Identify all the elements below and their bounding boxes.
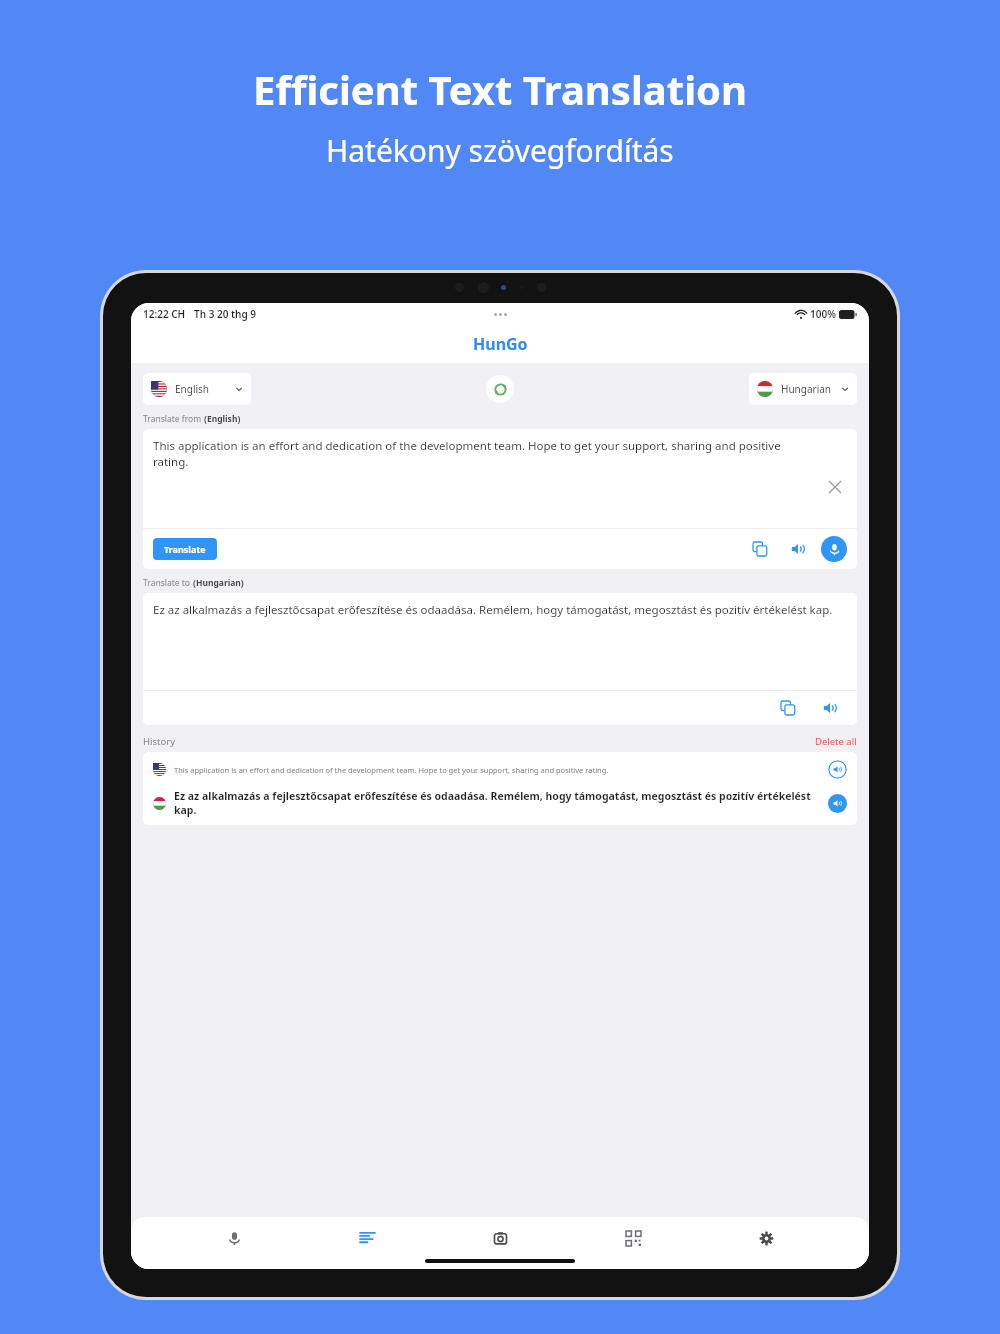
- staticText: This application is an effort and dedica…: [153, 438, 817, 469]
- staticText: (Hungarian): [193, 577, 244, 589]
- button[interactable]: Play source audio: [828, 760, 847, 779]
- staticText: Delete all: [815, 735, 857, 748]
- button[interactable]: English: [143, 373, 251, 405]
- staticText: Translate to: [143, 577, 193, 589]
- staticText: 12:22 CH: [143, 307, 186, 321]
- button[interactable]: Speak translation: [819, 697, 841, 719]
- button[interactable]: Speak text: [787, 538, 809, 560]
- staticText: Ez az alkalmazás a fejlesztőcsapat erőfe…: [174, 789, 820, 817]
- button[interactable]: Camera translate: [470, 1225, 530, 1251]
- staticText: Efficient Text Translation: [253, 62, 748, 116]
- button[interactable]: Swap languages: [486, 375, 514, 403]
- staticText: English: [175, 382, 210, 396]
- button[interactable]: Copy translation: [777, 697, 799, 719]
- button[interactable]: Copy text: [749, 538, 771, 560]
- staticText: History: [143, 735, 175, 748]
- button[interactable]: QR scan: [603, 1225, 663, 1251]
- button[interactable]: Hungarian: [749, 373, 857, 405]
- button[interactable]: Play translation audio: [828, 794, 847, 813]
- button[interactable]: Translate: [153, 538, 217, 560]
- staticText: Th 3 20 thg 9: [194, 307, 257, 321]
- staticText: Translate from: [143, 413, 204, 425]
- staticText: Translate: [164, 543, 206, 555]
- staticText: (English): [204, 413, 241, 425]
- staticText: Ez az alkalmazás a fejlesztőcsapat erőfe…: [153, 602, 833, 618]
- staticText: This application is an effort and dedica…: [174, 765, 609, 775]
- button[interactable]: Clear text: [825, 477, 845, 497]
- staticText: HunGo: [473, 333, 528, 355]
- button[interactable]: Delete all: [815, 735, 857, 748]
- button[interactable]: Settings: [736, 1225, 796, 1251]
- staticText: 100%: [810, 307, 836, 321]
- button[interactable]: Voice translate: [204, 1225, 264, 1251]
- button[interactable]: Text translate: [337, 1225, 397, 1251]
- button[interactable]: Voice input: [821, 536, 847, 562]
- button[interactable]: This application is an effort and dedica…: [143, 752, 857, 825]
- staticText: Hungarian: [781, 382, 832, 396]
- button[interactable]: HunGo: [473, 333, 528, 355]
- staticText: Hatékony szövegfordítás: [326, 130, 674, 171]
